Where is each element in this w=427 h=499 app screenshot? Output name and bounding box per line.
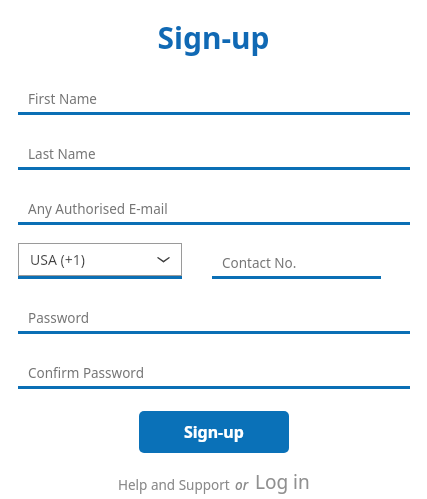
- button[interactable]: Select country code: [18, 243, 182, 279]
- staticText: Sign-up: [157, 17, 270, 58]
- button[interactable]: Any Authorised E-mail: [18, 196, 410, 225]
- staticText: Password: [28, 309, 90, 327]
- staticText: or: [235, 476, 249, 494]
- staticText: Sign-up: [184, 421, 244, 443]
- button[interactable]: Last Name: [18, 141, 410, 170]
- staticText: USA (+1): [30, 250, 85, 269]
- button[interactable]: Log in: [255, 469, 310, 495]
- button[interactable]: First Name: [18, 86, 410, 115]
- staticText: Confirm Password: [28, 364, 144, 382]
- button[interactable]: Help and Support: [118, 477, 230, 495]
- staticText: Log in: [255, 469, 310, 495]
- button[interactable]: Sign-up: [139, 411, 289, 453]
- staticText: Help and Support: [118, 476, 230, 494]
- button[interactable]: Contact No.: [212, 250, 381, 279]
- staticText: Last Name: [28, 145, 96, 163]
- staticText: First Name: [28, 90, 97, 108]
- staticText: Contact No.: [222, 254, 297, 272]
- staticText: Any Authorised E-mail: [28, 200, 168, 218]
- button[interactable]: Confirm Password: [18, 360, 410, 389]
- button[interactable]: Password: [18, 305, 410, 334]
